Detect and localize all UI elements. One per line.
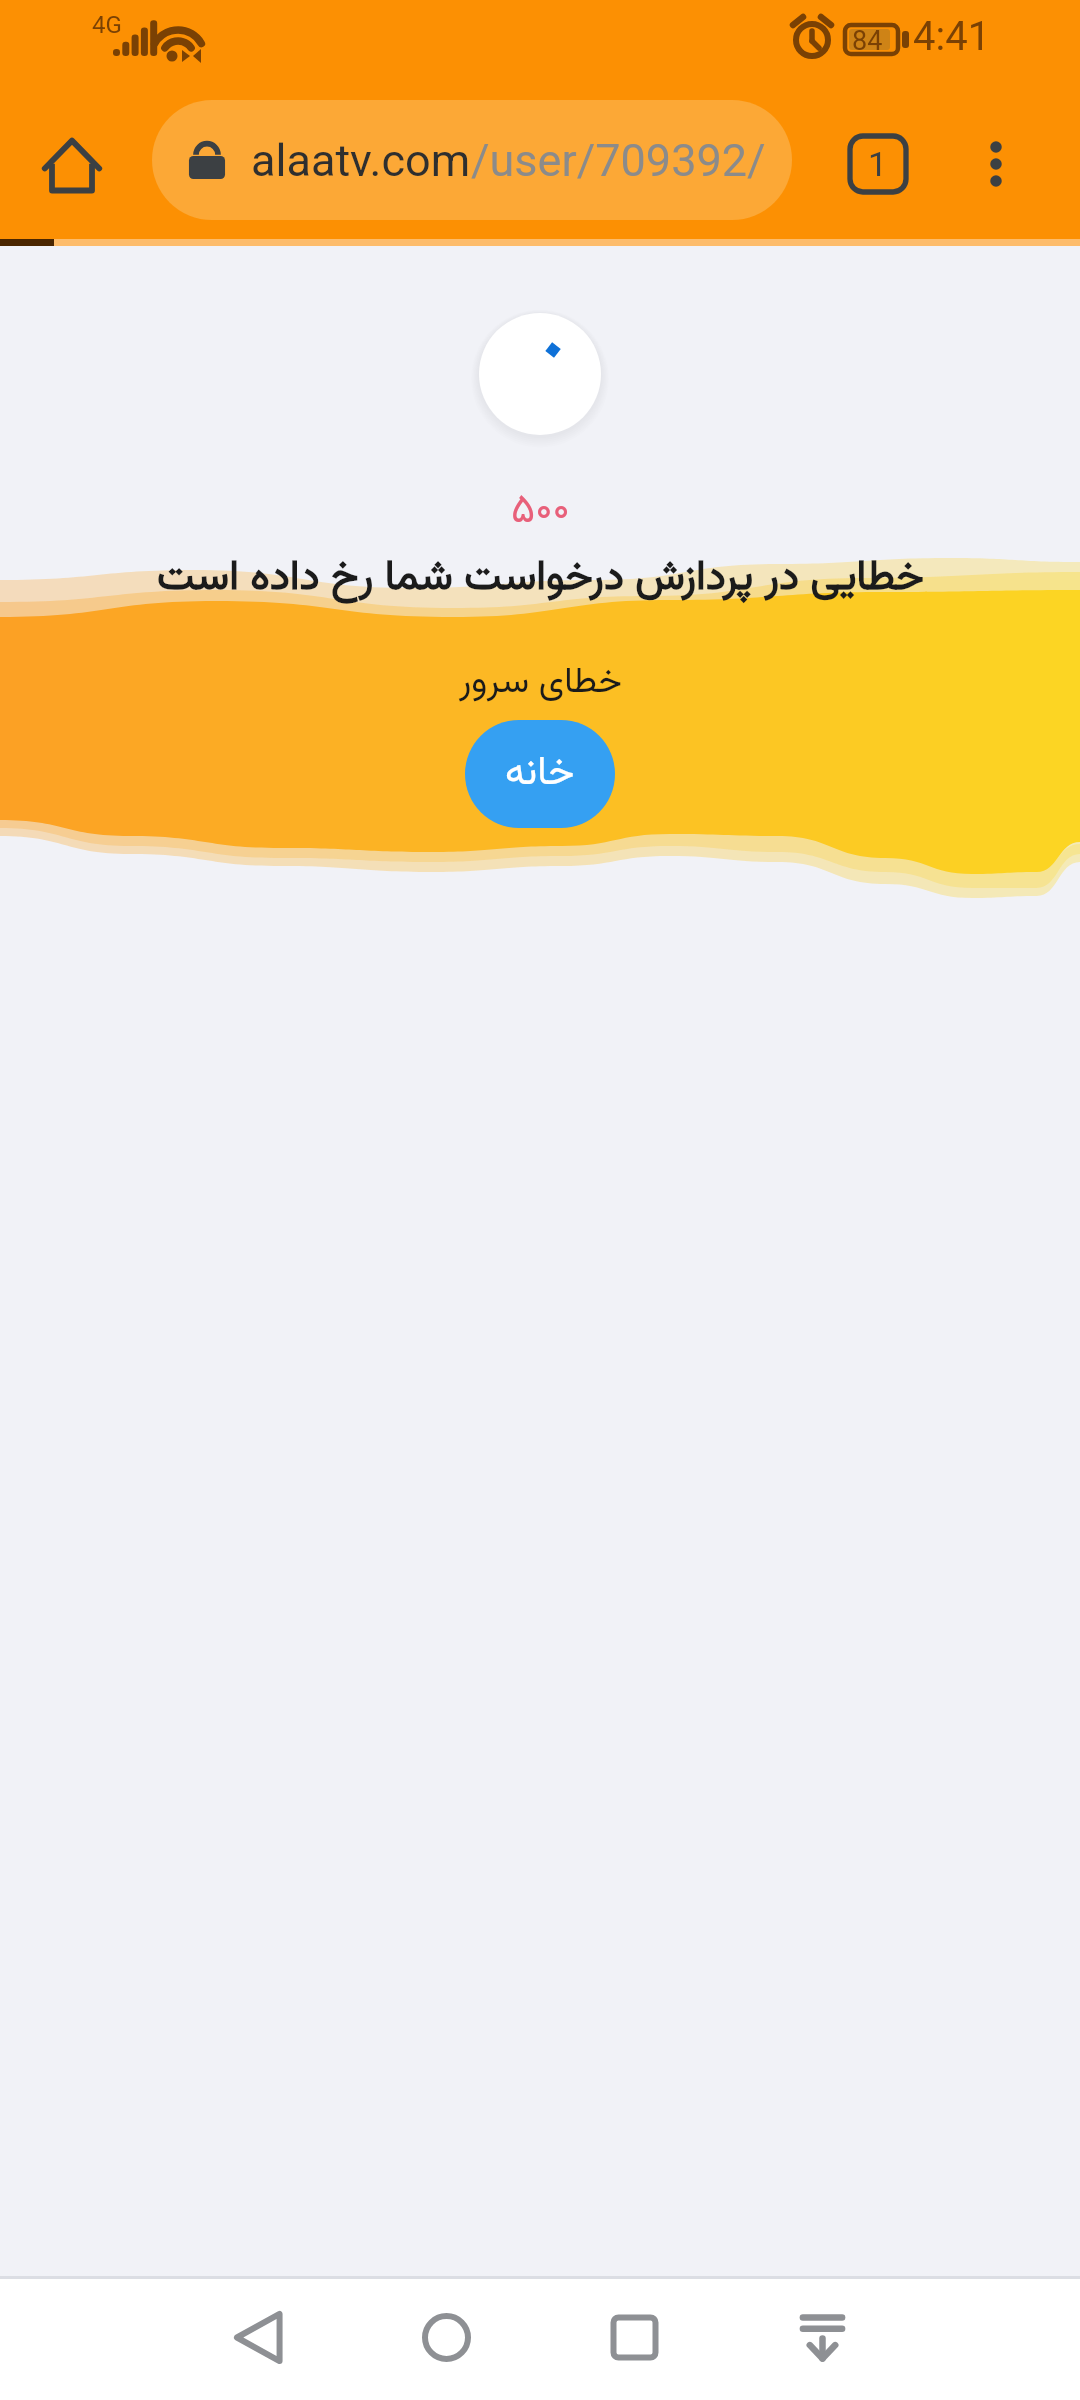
button[interactable]: alaatv.com bbox=[152, 100, 792, 220]
staticText: خانه bbox=[505, 743, 575, 806]
button[interactable]: Switch tabs, 1 open tab bbox=[832, 118, 924, 210]
staticText: خطای سرور bbox=[459, 655, 622, 711]
staticText: خطایی در پردازش درخواست شما رخ داده است bbox=[157, 546, 924, 612]
staticText: alaatv.com bbox=[251, 134, 471, 187]
button[interactable]: Recent apps bbox=[540, 2279, 728, 2400]
staticText: /user/709392/ bbox=[471, 134, 766, 187]
staticText: 1 bbox=[868, 144, 888, 184]
staticText: ۵۰۰ bbox=[511, 480, 570, 544]
button[interactable]: More options bbox=[950, 118, 1042, 210]
button[interactable]: Home page bbox=[30, 123, 114, 207]
button[interactable]: Home bbox=[352, 2279, 540, 2400]
staticText: 4:41 bbox=[913, 13, 991, 60]
staticText: 4G bbox=[92, 11, 122, 39]
button[interactable]: Back bbox=[164, 2279, 352, 2400]
button[interactable]: خانه bbox=[465, 720, 615, 828]
staticText: 84 bbox=[852, 25, 883, 57]
button[interactable]: Hide navigation bar bbox=[728, 2279, 916, 2400]
